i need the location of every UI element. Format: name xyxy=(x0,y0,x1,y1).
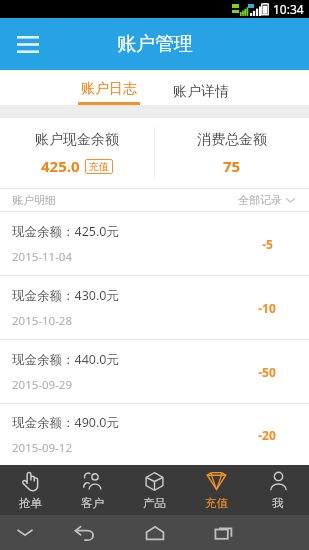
staticText: -10 xyxy=(258,300,276,316)
button[interactable]: 抢单 xyxy=(0,465,61,515)
button[interactable]: 账户日志 xyxy=(74,80,144,105)
button[interactable]: 我 xyxy=(247,465,309,515)
staticText: 全部记录 xyxy=(238,193,282,207)
staticText: 现金余额：430.0元 xyxy=(12,287,119,304)
button[interactable]: 现金余额：490.0元 xyxy=(0,404,309,465)
button[interactable]: 现金余额：425.0元 xyxy=(0,212,309,275)
staticText: -5 xyxy=(262,236,273,252)
staticText: 充值 xyxy=(89,160,109,173)
button[interactable]: 客户 xyxy=(61,465,123,515)
staticText: 现金余额：490.0元 xyxy=(12,414,119,431)
staticText: 账户详情 xyxy=(173,83,229,101)
staticText: 2015-10-28 xyxy=(12,313,73,329)
staticText: 2015-09-29 xyxy=(12,377,73,393)
staticText: -20 xyxy=(258,427,276,443)
staticText: 账户日志 xyxy=(81,80,137,98)
staticText: 现金余额：440.0元 xyxy=(12,351,119,368)
button[interactable]: 全部记录 xyxy=(236,193,297,207)
staticText: -50 xyxy=(258,364,276,380)
button[interactable]: 充值 xyxy=(85,159,113,174)
staticText: 产品 xyxy=(143,496,166,510)
button[interactable]: 账户详情 xyxy=(166,83,236,105)
staticText: 2015-11-04 xyxy=(12,249,73,265)
other: Home xyxy=(145,526,165,540)
button[interactable]: 产品 xyxy=(123,465,185,515)
staticText: 消费总金额 xyxy=(197,131,267,149)
button[interactable]: 充值 xyxy=(185,465,247,515)
staticText: 75 xyxy=(223,156,241,176)
staticText: 现金余额：425.0元 xyxy=(12,223,119,240)
staticText: 抢单 xyxy=(19,496,42,510)
staticText: 425.0 xyxy=(41,156,80,176)
staticText: 10:34 xyxy=(273,1,304,17)
staticText: 我 xyxy=(272,496,284,510)
staticText: 账户管理 xyxy=(117,32,193,56)
other: Back xyxy=(75,525,95,541)
staticText: 账户现金余额 xyxy=(35,131,119,149)
other: Hide xyxy=(18,528,32,537)
other: Recents xyxy=(215,525,235,540)
staticText: 充值 xyxy=(205,496,228,510)
button[interactable]: 现金余额：440.0元 xyxy=(0,340,309,403)
button[interactable]: 现金余额：430.0元 xyxy=(0,276,309,339)
staticText: 2015-09-12 xyxy=(12,440,73,456)
staticText: 客户 xyxy=(81,496,104,510)
button[interactable]: Menu xyxy=(8,24,48,64)
staticText: 账户明细 xyxy=(12,193,56,207)
